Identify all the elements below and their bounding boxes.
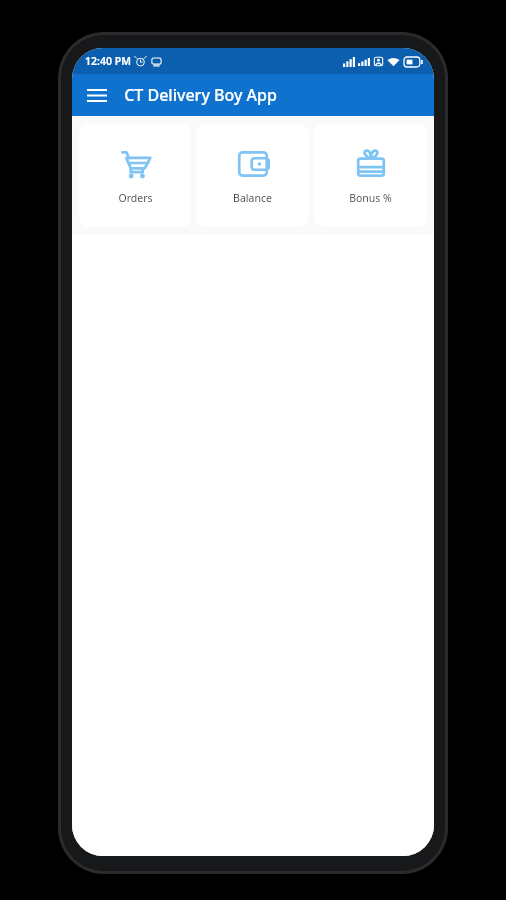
button[interactable]: Bonus % [314,124,427,227]
staticText: Orders [118,191,153,205]
button[interactable]: Balance [196,124,309,227]
staticText: 12:40 PM [85,54,131,68]
staticText: Balance [233,191,272,205]
button[interactable]: Open navigation menu [80,78,114,112]
button[interactable]: Orders [79,124,191,227]
staticText: CT Delivery Boy App [124,84,277,106]
staticText: Bonus % [349,191,392,205]
